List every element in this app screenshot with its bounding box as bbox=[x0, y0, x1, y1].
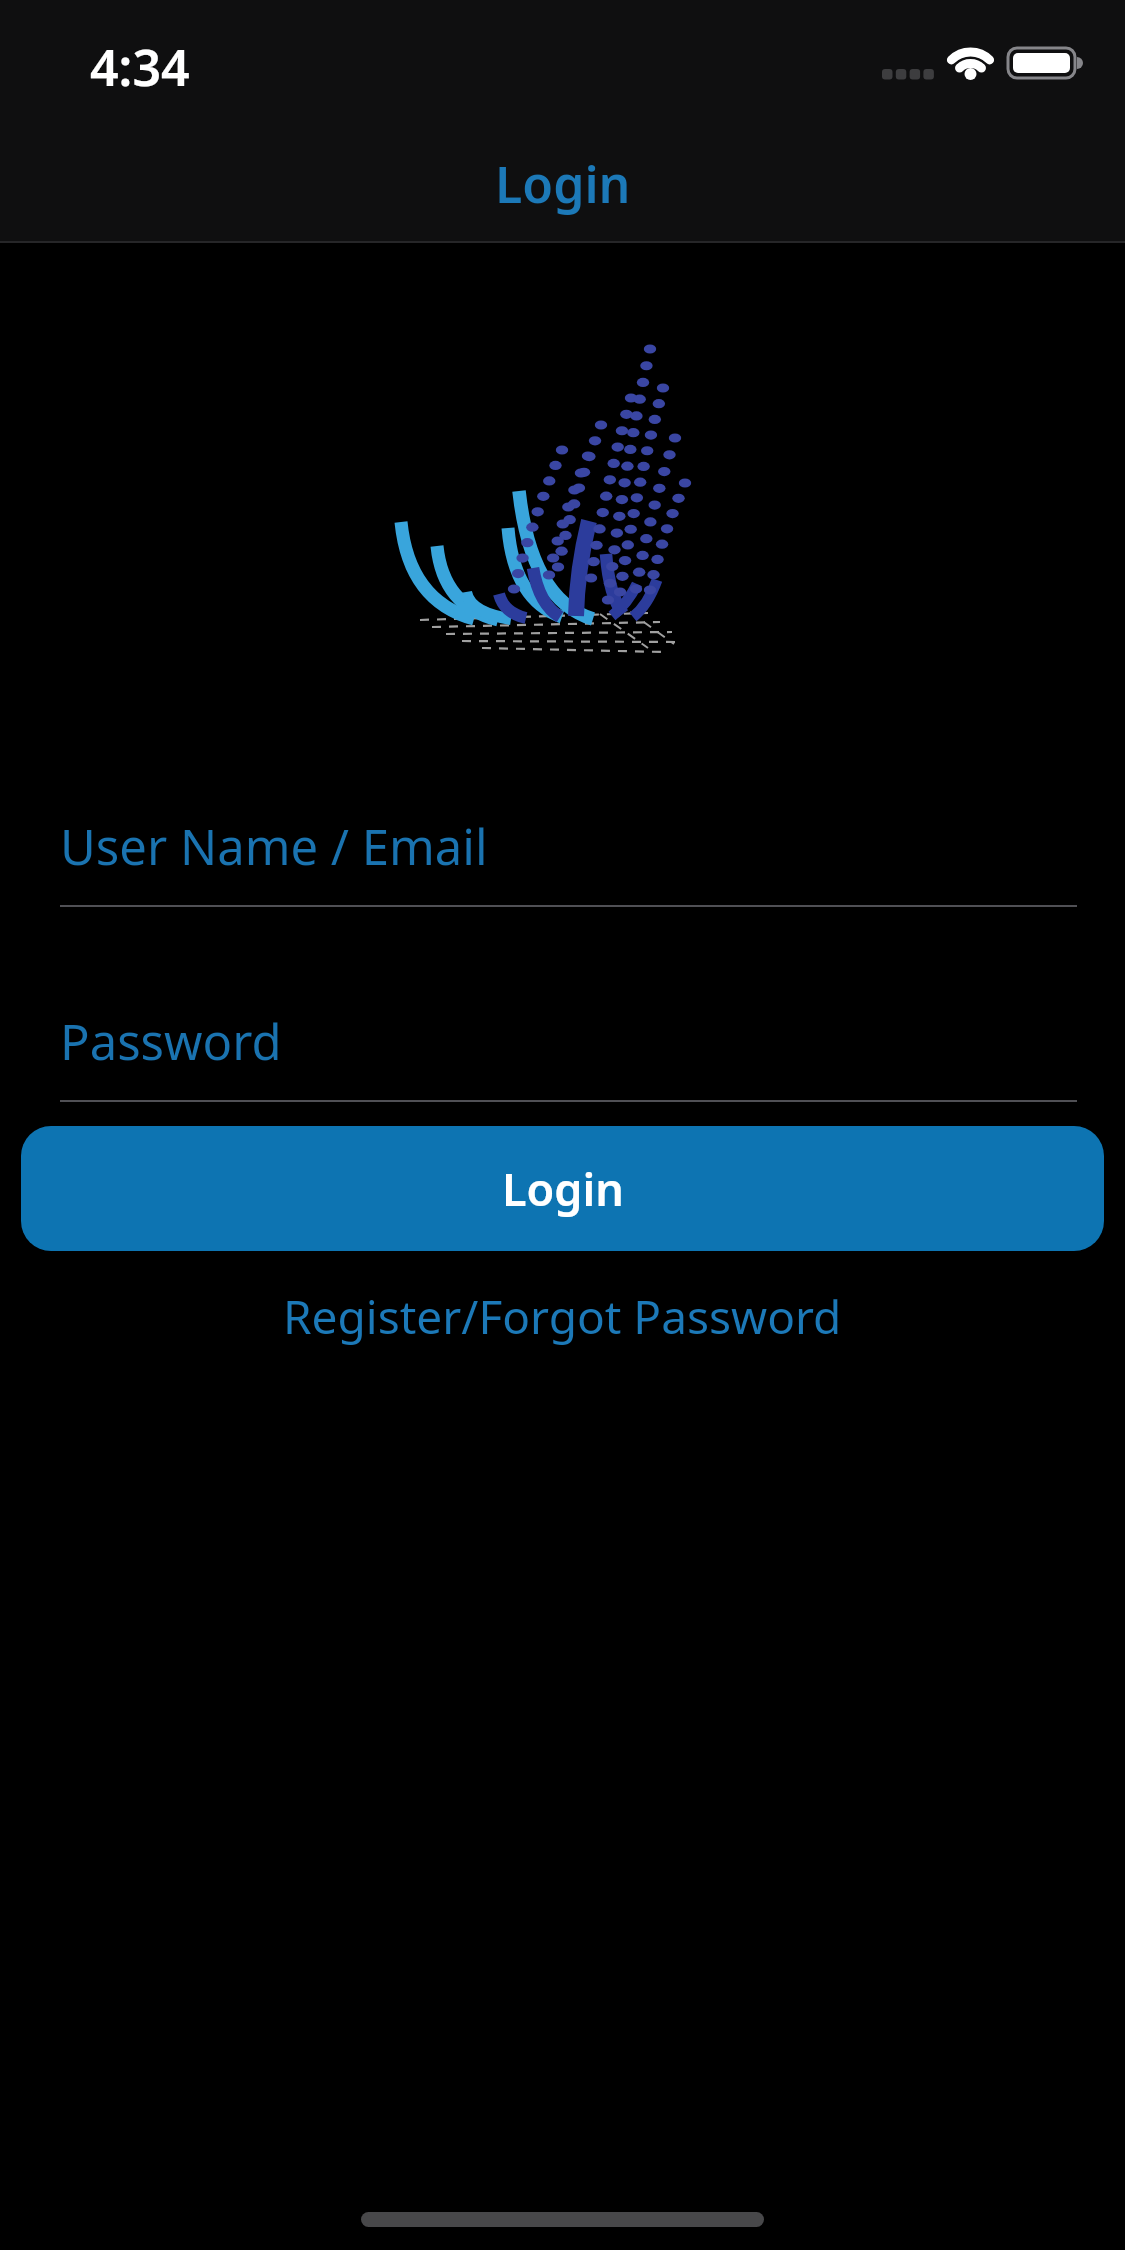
staticText: Login bbox=[502, 1158, 624, 1219]
staticText: 4:34 bbox=[90, 33, 190, 101]
staticText: Login bbox=[495, 150, 631, 218]
button[interactable]: Login bbox=[21, 1126, 1104, 1251]
staticText: Register/Forgot Password bbox=[283, 1285, 842, 1348]
button[interactable]: Register/Forgot Password bbox=[283, 1285, 842, 1348]
staticText: Password bbox=[60, 1008, 282, 1075]
staticText: User Name / Email bbox=[60, 813, 488, 880]
